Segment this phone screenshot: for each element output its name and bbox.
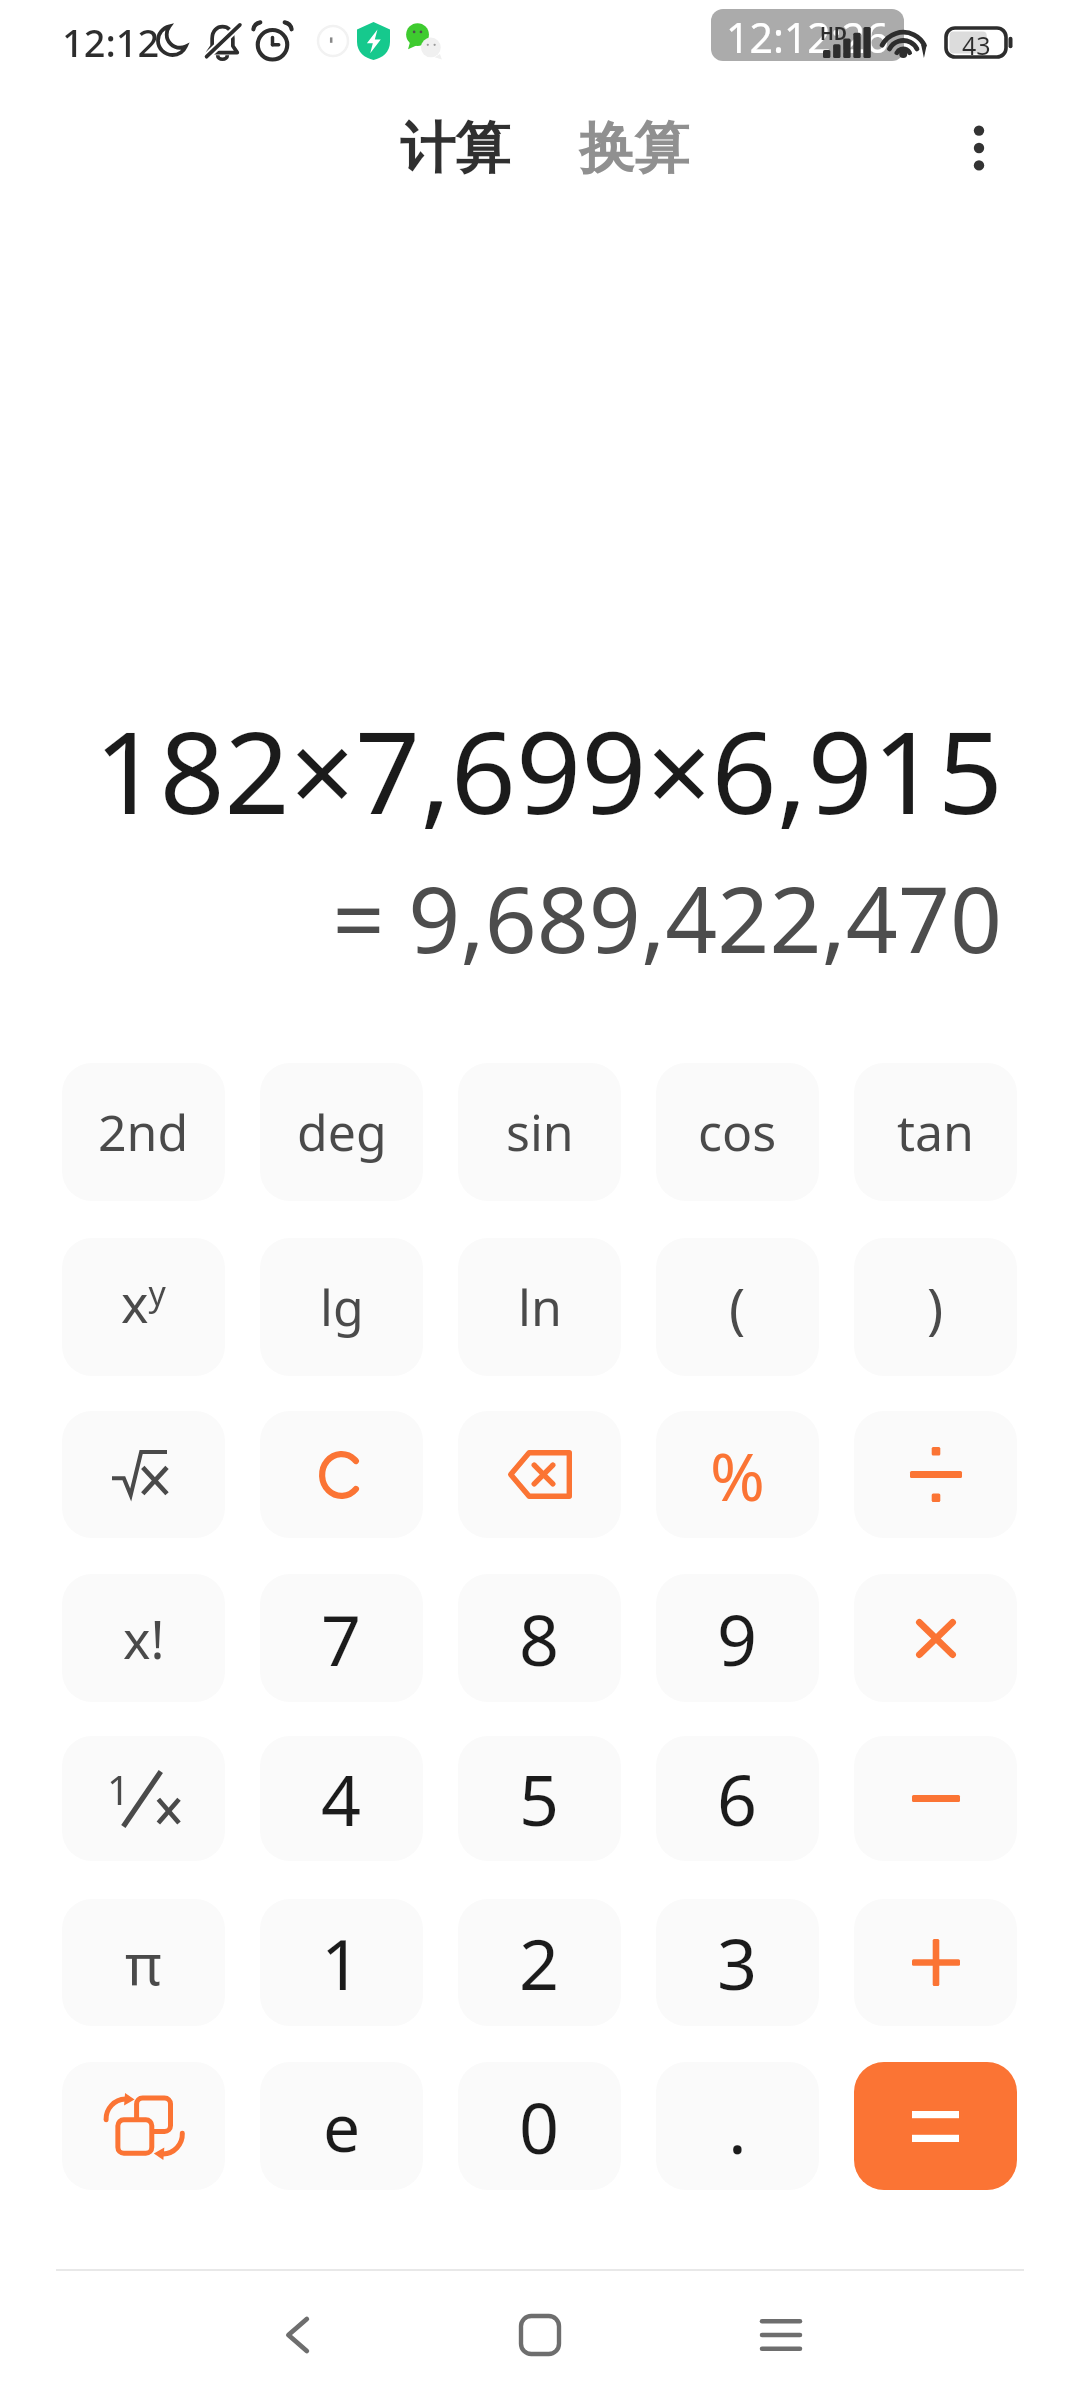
- staticText: ln: [518, 1273, 562, 1341]
- staticText: 4: [321, 1751, 362, 1846]
- button[interactable]: Recents: [731, 2285, 831, 2385]
- button[interactable]: .: [656, 2062, 819, 2190]
- button[interactable]: 0: [458, 2062, 621, 2190]
- button[interactable]: Backspace: [458, 1411, 621, 1538]
- staticText: 43: [962, 28, 991, 57]
- staticText: 12:12:26: [726, 9, 889, 61]
- button[interactable]: Convert: [62, 2062, 225, 2190]
- staticText: cos: [698, 1098, 777, 1166]
- button[interactable]: ): [854, 1238, 1017, 1376]
- button[interactable]: 换算: [571, 104, 697, 193]
- button[interactable]: Square root: [62, 1411, 225, 1538]
- button[interactable]: Clear: [260, 1411, 423, 1538]
- button[interactable]: lg: [260, 1238, 423, 1376]
- staticText: 182×7,699×6,915: [94, 692, 1003, 842]
- staticText: 2nd: [98, 1098, 189, 1166]
- button[interactable]: deg: [260, 1063, 423, 1201]
- staticText: π: [125, 1925, 162, 2001]
- button[interactable]: Divide: [854, 1411, 1017, 1538]
- staticText: %: [710, 1430, 765, 1520]
- button[interactable]: Equals: [854, 2062, 1017, 2190]
- button[interactable]: 1: [260, 1899, 423, 2026]
- button[interactable]: 8: [458, 1574, 621, 1702]
- button[interactable]: ln: [458, 1238, 621, 1376]
- staticText: 2: [519, 1915, 560, 2010]
- staticText: 0: [519, 2079, 560, 2174]
- staticText: 计算: [400, 114, 510, 183]
- button[interactable]: More options: [935, 104, 1023, 192]
- button[interactable]: 3: [656, 1899, 819, 2026]
- button[interactable]: 1: [62, 1736, 225, 1861]
- button[interactable]: x!: [62, 1574, 225, 1702]
- staticText: 1: [321, 1915, 362, 2010]
- button[interactable]: cos: [656, 1063, 819, 1201]
- staticText: 6: [717, 1751, 758, 1846]
- staticText: 8: [519, 1591, 560, 1686]
- button[interactable]: 4: [260, 1736, 423, 1861]
- staticText: x!: [123, 1603, 165, 1674]
- staticText: lg: [320, 1273, 364, 1341]
- staticText: = 9,689,422,470: [332, 856, 1002, 980]
- staticText: 换算: [579, 114, 689, 183]
- staticText: e: [323, 2081, 361, 2171]
- staticText: HD: [820, 21, 847, 46]
- button[interactable]: Home: [490, 2285, 590, 2385]
- button[interactable]: xy: [62, 1238, 225, 1376]
- button[interactable]: 2nd: [62, 1063, 225, 1201]
- button[interactable]: 5: [458, 1736, 621, 1861]
- staticText: ): [927, 1270, 944, 1344]
- button[interactable]: (: [656, 1238, 819, 1376]
- staticText: 5: [519, 1751, 560, 1846]
- button[interactable]: sin: [458, 1063, 621, 1201]
- button[interactable]: 计算: [392, 104, 518, 193]
- staticText: 1: [107, 1762, 130, 1816]
- button[interactable]: Back: [248, 2285, 348, 2385]
- button[interactable]: 2: [458, 1899, 621, 2026]
- button[interactable]: 9: [656, 1574, 819, 1702]
- button[interactable]: Minus: [854, 1736, 1017, 1861]
- button[interactable]: tan: [854, 1063, 1017, 1201]
- staticText: sin: [506, 1098, 574, 1166]
- button[interactable]: π: [62, 1899, 225, 2026]
- button[interactable]: Plus: [854, 1899, 1017, 2026]
- staticText: .: [728, 2079, 747, 2174]
- button[interactable]: Multiply: [854, 1574, 1017, 1702]
- staticText: tan: [897, 1098, 974, 1166]
- button[interactable]: 6: [656, 1736, 819, 1861]
- staticText: 7: [321, 1591, 362, 1686]
- staticText: 12:12: [62, 16, 160, 68]
- staticText: deg: [297, 1098, 387, 1166]
- staticText: 3: [717, 1915, 758, 2010]
- button[interactable]: %: [656, 1411, 819, 1538]
- button[interactable]: e: [260, 2062, 423, 2190]
- staticText: xy: [121, 1267, 166, 1338]
- staticText: (: [729, 1270, 746, 1344]
- staticText: 9: [717, 1591, 758, 1686]
- button[interactable]: 7: [260, 1574, 423, 1702]
